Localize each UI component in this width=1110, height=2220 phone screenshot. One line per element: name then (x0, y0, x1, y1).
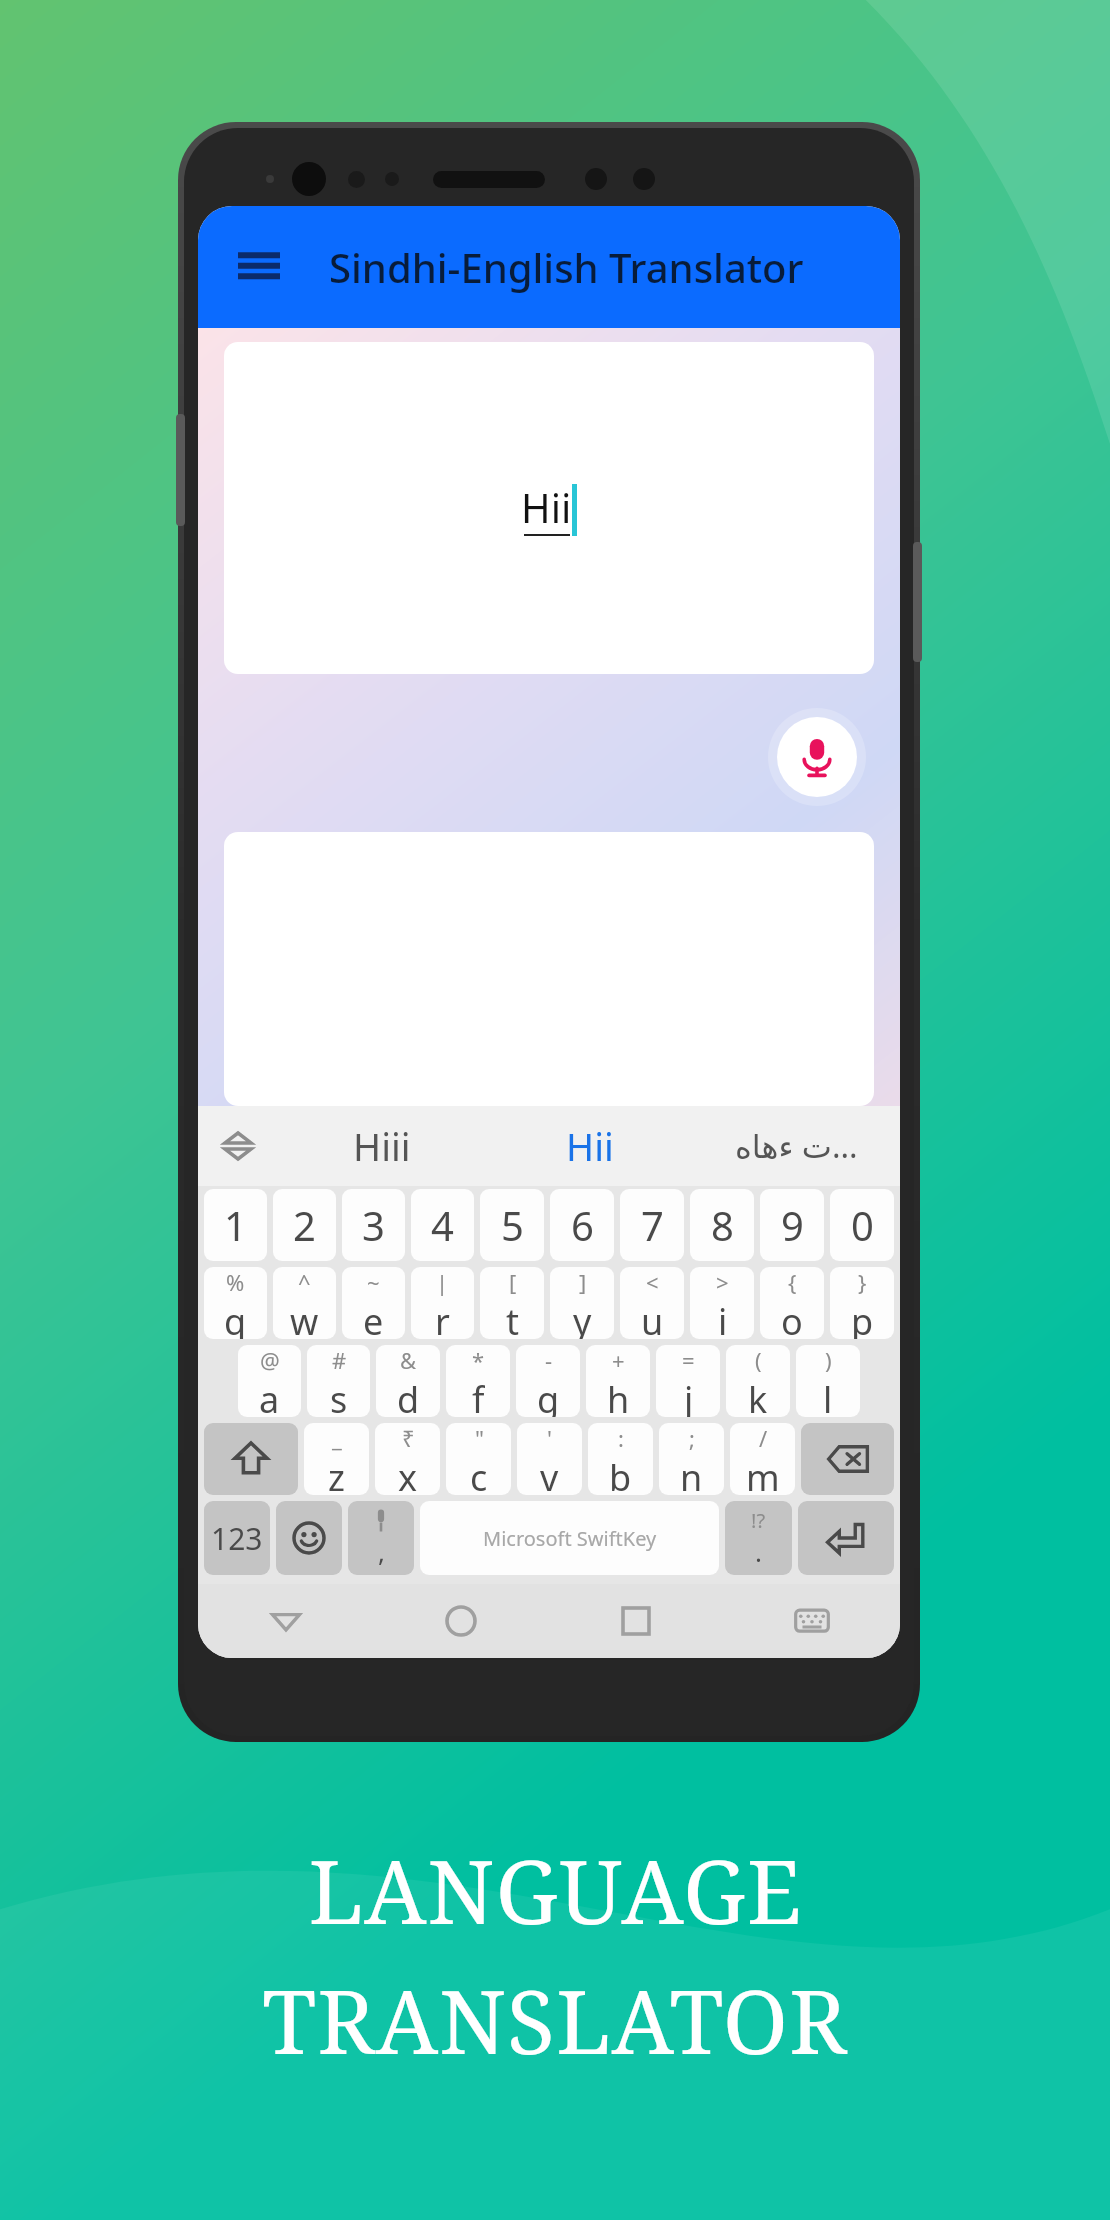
button[interactable]: } (830, 1267, 894, 1339)
button[interactable]: 4 (411, 1189, 474, 1261)
button[interactable]: 3 (342, 1189, 405, 1261)
button[interactable]: ) (796, 1345, 860, 1417)
button[interactable]: Emoji (276, 1501, 342, 1575)
button[interactable]: 1 (204, 1189, 267, 1261)
staticText: b (609, 1453, 632, 1495)
button[interactable]: * (446, 1345, 510, 1417)
staticText: 8 (711, 1198, 734, 1252)
staticText: # (332, 1345, 347, 1375)
staticText: u (641, 1297, 664, 1339)
button[interactable]: ] (550, 1267, 614, 1339)
button[interactable]: = (656, 1345, 720, 1417)
button[interactable]: Menu (198, 206, 900, 328)
button[interactable]: ; (659, 1423, 724, 1495)
staticText: ^ (298, 1267, 311, 1297)
button[interactable]: 6 (550, 1189, 614, 1261)
staticText: { (788, 1267, 797, 1297)
staticText: Hii (566, 1120, 614, 1172)
button[interactable]: Home (373, 1584, 548, 1658)
staticText: p (851, 1297, 874, 1339)
staticText: & (400, 1345, 417, 1375)
button[interactable]: Hii (486, 1106, 693, 1186)
staticText: ] (579, 1267, 587, 1297)
staticText: v (540, 1453, 559, 1495)
button[interactable]: Shift (204, 1423, 298, 1495)
staticText: 3 (362, 1198, 385, 1252)
button[interactable]: 123 (204, 1501, 270, 1575)
staticText: } (858, 1267, 867, 1297)
button[interactable]: Back (198, 1584, 373, 1658)
button[interactable]: 2 (273, 1189, 336, 1261)
button[interactable]: ' (517, 1423, 582, 1495)
button[interactable]: Menu (232, 240, 286, 294)
staticText: e (363, 1297, 384, 1339)
button[interactable]: < (620, 1267, 684, 1339)
staticText: > (716, 1267, 729, 1297)
button[interactable]: ^ (273, 1267, 336, 1339)
button[interactable]: Voice input (768, 708, 866, 806)
button[interactable]: Hide keyboard (724, 1584, 900, 1658)
staticText: s (330, 1375, 348, 1417)
button[interactable]: Recents (548, 1584, 724, 1658)
button[interactable]: " (446, 1423, 511, 1495)
button[interactable]: # (307, 1345, 370, 1417)
staticText: ₹ (402, 1423, 415, 1453)
button[interactable]: Expand suggestions (198, 1106, 278, 1186)
staticText: " (475, 1423, 484, 1453)
staticText: ( (755, 1345, 762, 1375)
button[interactable]: : (588, 1423, 653, 1495)
button[interactable]: | (411, 1267, 474, 1339)
staticText: t (506, 1297, 519, 1339)
button[interactable]: > (690, 1267, 754, 1339)
button[interactable]: 0 (830, 1189, 894, 1261)
staticText: ; (689, 1423, 695, 1453)
button[interactable]: Space (420, 1501, 719, 1575)
button[interactable]: - (516, 1345, 580, 1417)
button[interactable]: { (760, 1267, 824, 1339)
staticText: @ (260, 1345, 280, 1375)
staticText: g (537, 1375, 560, 1417)
button[interactable]: Hii (224, 342, 874, 674)
staticText: Microsoft SwiftKey (483, 1525, 657, 1552)
button[interactable]: Enter (798, 1501, 894, 1575)
staticText: !? (751, 1507, 766, 1534)
button[interactable]: 7 (620, 1189, 684, 1261)
staticText: 1 (224, 1198, 247, 1252)
staticText: Hii (521, 480, 572, 534)
staticText: . (755, 1534, 762, 1569)
staticText: 123 (211, 1518, 263, 1559)
button[interactable]: [ (480, 1267, 544, 1339)
button[interactable]: Hiii (278, 1106, 486, 1186)
staticText: i (718, 1297, 728, 1339)
staticText: q (224, 1297, 247, 1339)
staticText: ' (547, 1423, 552, 1453)
staticText: - (545, 1345, 553, 1375)
button[interactable]: 9 (760, 1189, 824, 1261)
button[interactable]: ~ (342, 1267, 405, 1339)
button[interactable]: / (730, 1423, 795, 1495)
button[interactable]: 5 (480, 1189, 544, 1261)
button[interactable]: & (376, 1345, 440, 1417)
button[interactable]: !? (725, 1501, 792, 1575)
button[interactable]: % (204, 1267, 267, 1339)
staticText: | (436, 1267, 449, 1297)
button[interactable]: ₹ (375, 1423, 440, 1495)
button[interactable]: @ (238, 1345, 301, 1417)
staticText: m (746, 1453, 780, 1495)
button[interactable]: 8 (690, 1189, 754, 1261)
staticText: 5 (501, 1198, 524, 1252)
staticText: % (226, 1267, 245, 1297)
staticText: Hiii (353, 1120, 411, 1172)
staticText: l (823, 1375, 833, 1417)
button[interactable]: Voice typing (348, 1501, 414, 1575)
button[interactable]: ت ءهاه... (693, 1106, 900, 1186)
staticText: o (781, 1297, 803, 1339)
button[interactable]: + (586, 1345, 650, 1417)
staticText: * (472, 1345, 485, 1375)
staticText: ~ (367, 1267, 380, 1297)
button[interactable]: Backspace (801, 1423, 894, 1495)
staticText: 7 (641, 1198, 664, 1252)
button[interactable]: ( (726, 1345, 790, 1417)
button[interactable]: _ (304, 1423, 369, 1495)
